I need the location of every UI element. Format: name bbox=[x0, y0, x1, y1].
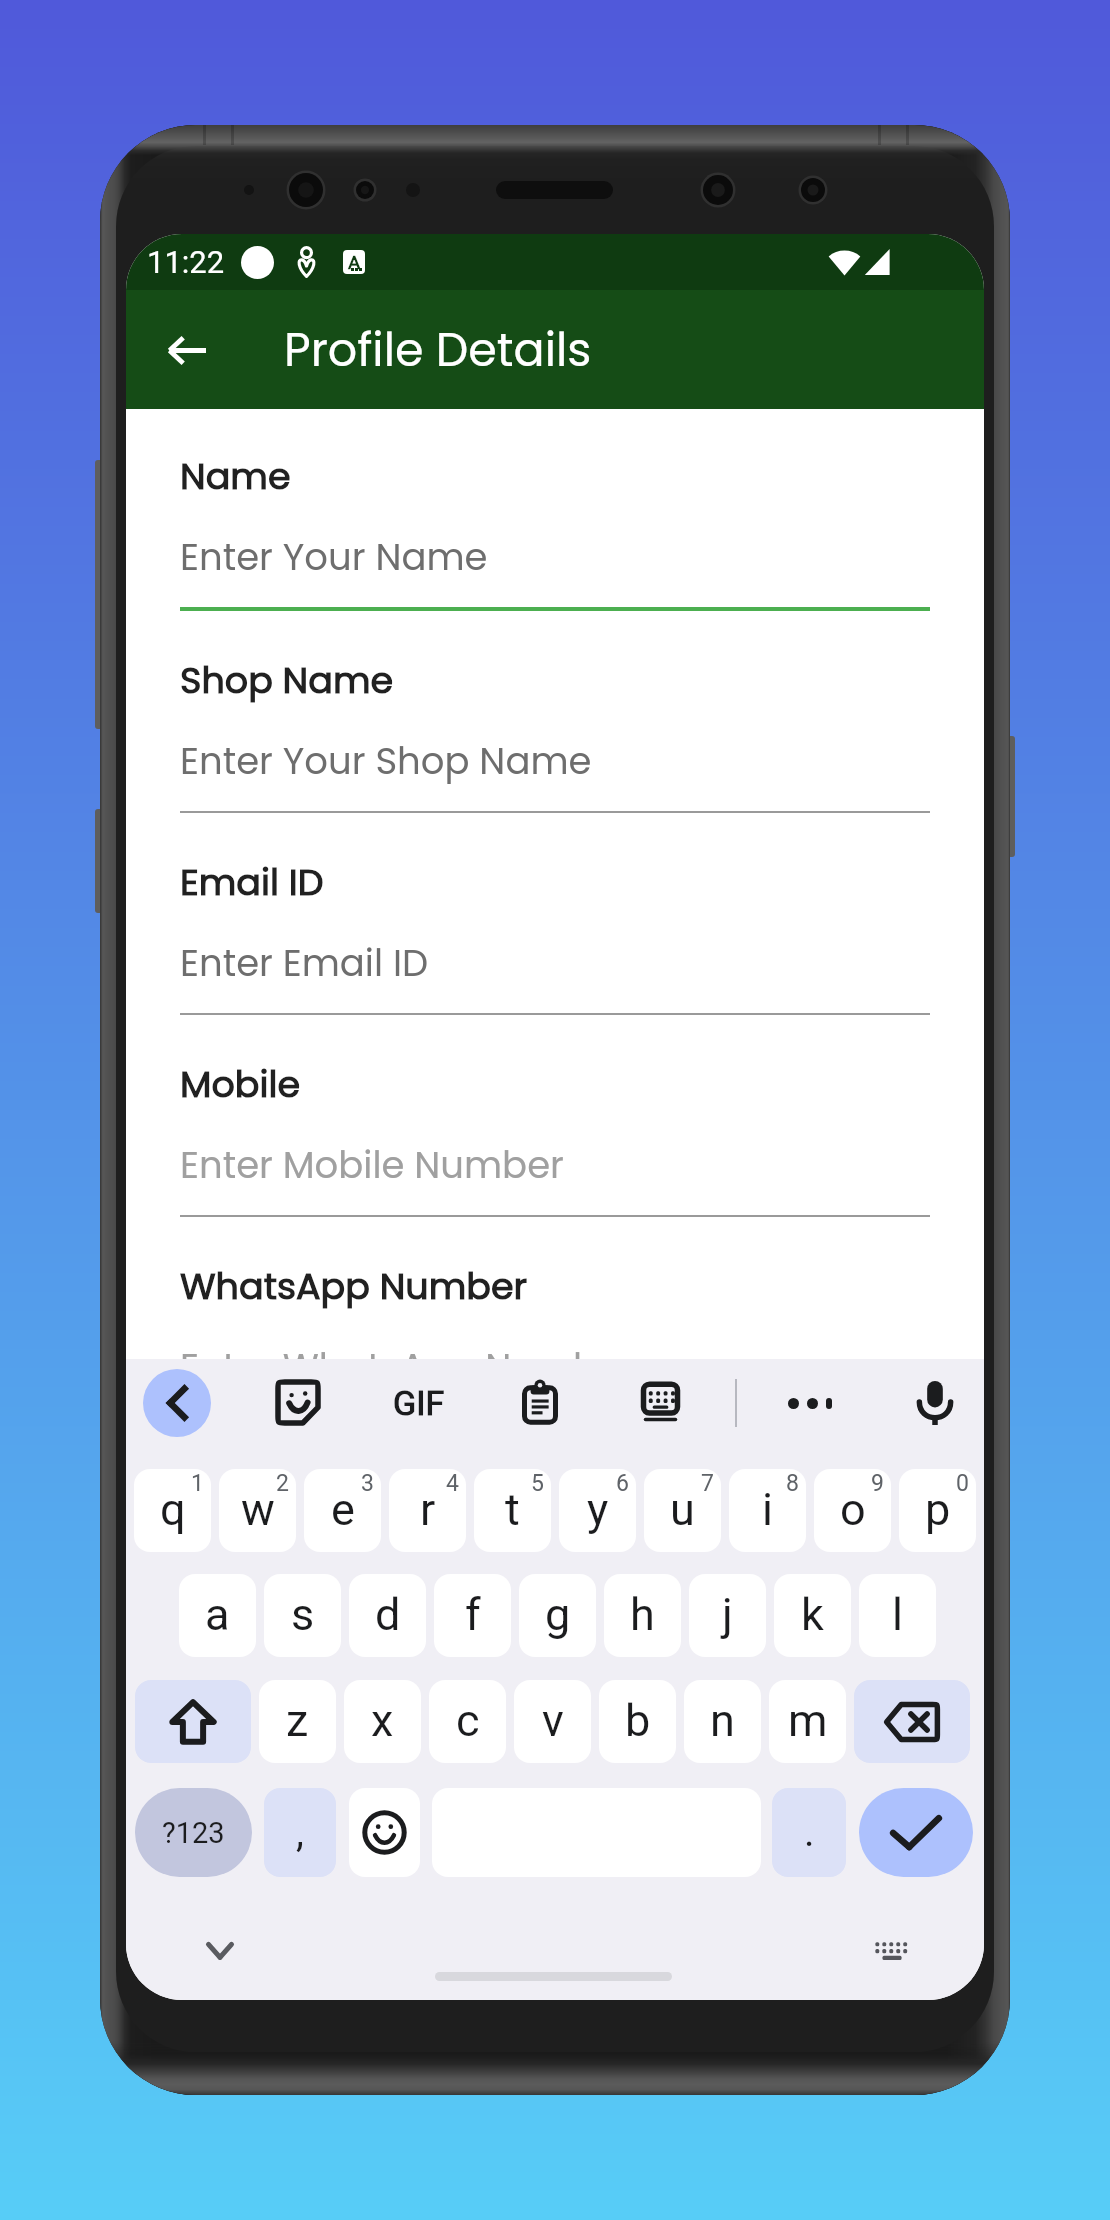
button[interactable]: ?123 bbox=[135, 1788, 252, 1877]
staticText: Enter Your Name bbox=[180, 531, 488, 583]
staticText: Shop Name bbox=[180, 655, 394, 706]
button[interactable]: Enter Your Name bbox=[180, 531, 930, 611]
staticText: g bbox=[545, 1588, 571, 1641]
staticText: , bbox=[296, 1809, 304, 1856]
staticText: s bbox=[291, 1588, 315, 1641]
button[interactable]: Enter bbox=[859, 1788, 973, 1877]
button[interactable]: Shift bbox=[135, 1680, 251, 1763]
staticText: 9 bbox=[871, 1470, 884, 1497]
button[interactable]: Enter Your Shop Name bbox=[180, 735, 930, 813]
button[interactable]: i bbox=[729, 1469, 806, 1552]
staticText: f bbox=[465, 1588, 481, 1641]
button[interactable]: e bbox=[304, 1469, 381, 1552]
staticText: 5 bbox=[531, 1470, 544, 1497]
staticText: A bbox=[348, 251, 361, 273]
staticText: x bbox=[371, 1694, 394, 1747]
button[interactable]: u bbox=[644, 1469, 721, 1552]
staticText: i bbox=[762, 1483, 773, 1536]
button[interactable]: a bbox=[179, 1574, 256, 1657]
staticText: Name bbox=[180, 451, 291, 502]
button[interactable]: n bbox=[684, 1680, 761, 1763]
staticText: 8 bbox=[786, 1470, 799, 1497]
staticText: WhatsApp Number bbox=[180, 1261, 528, 1312]
button[interactable]: f bbox=[434, 1574, 511, 1657]
button[interactable]: r bbox=[389, 1469, 466, 1552]
staticText: n bbox=[710, 1694, 735, 1747]
button[interactable]: k bbox=[774, 1574, 851, 1657]
staticText: r bbox=[420, 1483, 436, 1536]
staticText: Enter WhatsApp Number bbox=[180, 1341, 635, 1393]
button[interactable]: Voice input bbox=[918, 1381, 952, 1425]
staticText: Enter Mobile Number bbox=[180, 1139, 564, 1191]
staticText: v bbox=[542, 1694, 564, 1747]
button[interactable]: h bbox=[604, 1574, 681, 1657]
button[interactable]: w bbox=[219, 1469, 296, 1552]
button[interactable]: l bbox=[859, 1574, 936, 1657]
button[interactable]: , bbox=[264, 1788, 336, 1877]
staticText: 1 bbox=[191, 1470, 204, 1497]
staticText: . bbox=[804, 1809, 815, 1856]
staticText: b bbox=[625, 1694, 651, 1747]
staticText: Profile Details bbox=[284, 318, 592, 382]
staticText: h bbox=[630, 1588, 655, 1641]
staticText: t bbox=[505, 1483, 520, 1536]
staticText: 6 bbox=[616, 1470, 629, 1497]
button[interactable]: Change keyboard bbox=[869, 1928, 913, 1972]
staticText: Enter Email ID bbox=[180, 937, 429, 989]
button[interactable]: m bbox=[769, 1680, 846, 1763]
staticText: 0 bbox=[956, 1470, 969, 1497]
button[interactable]: Enter Mobile Number bbox=[180, 1139, 930, 1217]
button[interactable]: b bbox=[599, 1680, 676, 1763]
staticText: 2 bbox=[276, 1470, 289, 1497]
button[interactable]: More options bbox=[788, 1381, 832, 1425]
button[interactable]: d bbox=[349, 1574, 426, 1657]
button[interactable]: j bbox=[689, 1574, 766, 1657]
button[interactable]: g bbox=[519, 1574, 596, 1657]
button[interactable]: . bbox=[772, 1788, 846, 1877]
button[interactable]: Emoji bbox=[349, 1788, 420, 1877]
staticText: z bbox=[286, 1694, 309, 1747]
staticText: 3 bbox=[361, 1470, 374, 1497]
button[interactable]: Keyboard modes bbox=[641, 1383, 680, 1422]
button[interactable]: c bbox=[429, 1680, 506, 1763]
button[interactable]: p bbox=[899, 1469, 976, 1552]
button[interactable]: Stickers bbox=[278, 1382, 318, 1423]
staticText: p bbox=[925, 1483, 951, 1536]
button[interactable]: Hide keyboard bbox=[198, 1928, 242, 1972]
button[interactable]: o bbox=[814, 1469, 891, 1552]
staticText: d bbox=[375, 1588, 401, 1641]
staticText: u bbox=[670, 1483, 695, 1536]
staticText: 11:22 bbox=[147, 244, 225, 280]
staticText: 4 bbox=[446, 1470, 459, 1497]
staticText: e bbox=[331, 1483, 355, 1536]
button[interactable]: x bbox=[344, 1680, 421, 1763]
staticText: Enter Your Shop Name bbox=[180, 735, 592, 787]
staticText: c bbox=[456, 1694, 480, 1747]
button[interactable]: Clipboard bbox=[522, 1381, 558, 1423]
button[interactable]: Back bbox=[156, 319, 218, 381]
button[interactable]: Backspace bbox=[854, 1680, 970, 1763]
staticText: y bbox=[587, 1483, 609, 1536]
button[interactable]: y bbox=[559, 1469, 636, 1552]
staticText: Email ID bbox=[180, 857, 324, 908]
staticText: GIF bbox=[393, 1383, 445, 1423]
button[interactable]: s bbox=[264, 1574, 341, 1657]
button[interactable]: q bbox=[134, 1469, 211, 1552]
staticText: l bbox=[892, 1588, 903, 1641]
button[interactable]: v bbox=[514, 1680, 591, 1763]
staticText: o bbox=[840, 1483, 866, 1536]
button[interactable]: Enter Email ID bbox=[180, 937, 930, 1015]
staticText: m bbox=[788, 1694, 828, 1747]
button[interactable]: Enter WhatsApp Number bbox=[180, 1341, 930, 1419]
staticText: 7 bbox=[701, 1470, 714, 1497]
staticText: ?123 bbox=[162, 1816, 225, 1850]
button[interactable]: GIF bbox=[390, 1379, 448, 1427]
staticText: j bbox=[722, 1588, 733, 1641]
button[interactable]: Close toolbar bbox=[143, 1369, 211, 1437]
staticText: q bbox=[160, 1483, 186, 1536]
button[interactable]: z bbox=[259, 1680, 336, 1763]
staticText: w bbox=[241, 1483, 275, 1536]
staticText: k bbox=[801, 1588, 824, 1641]
button[interactable]: t bbox=[474, 1469, 551, 1552]
